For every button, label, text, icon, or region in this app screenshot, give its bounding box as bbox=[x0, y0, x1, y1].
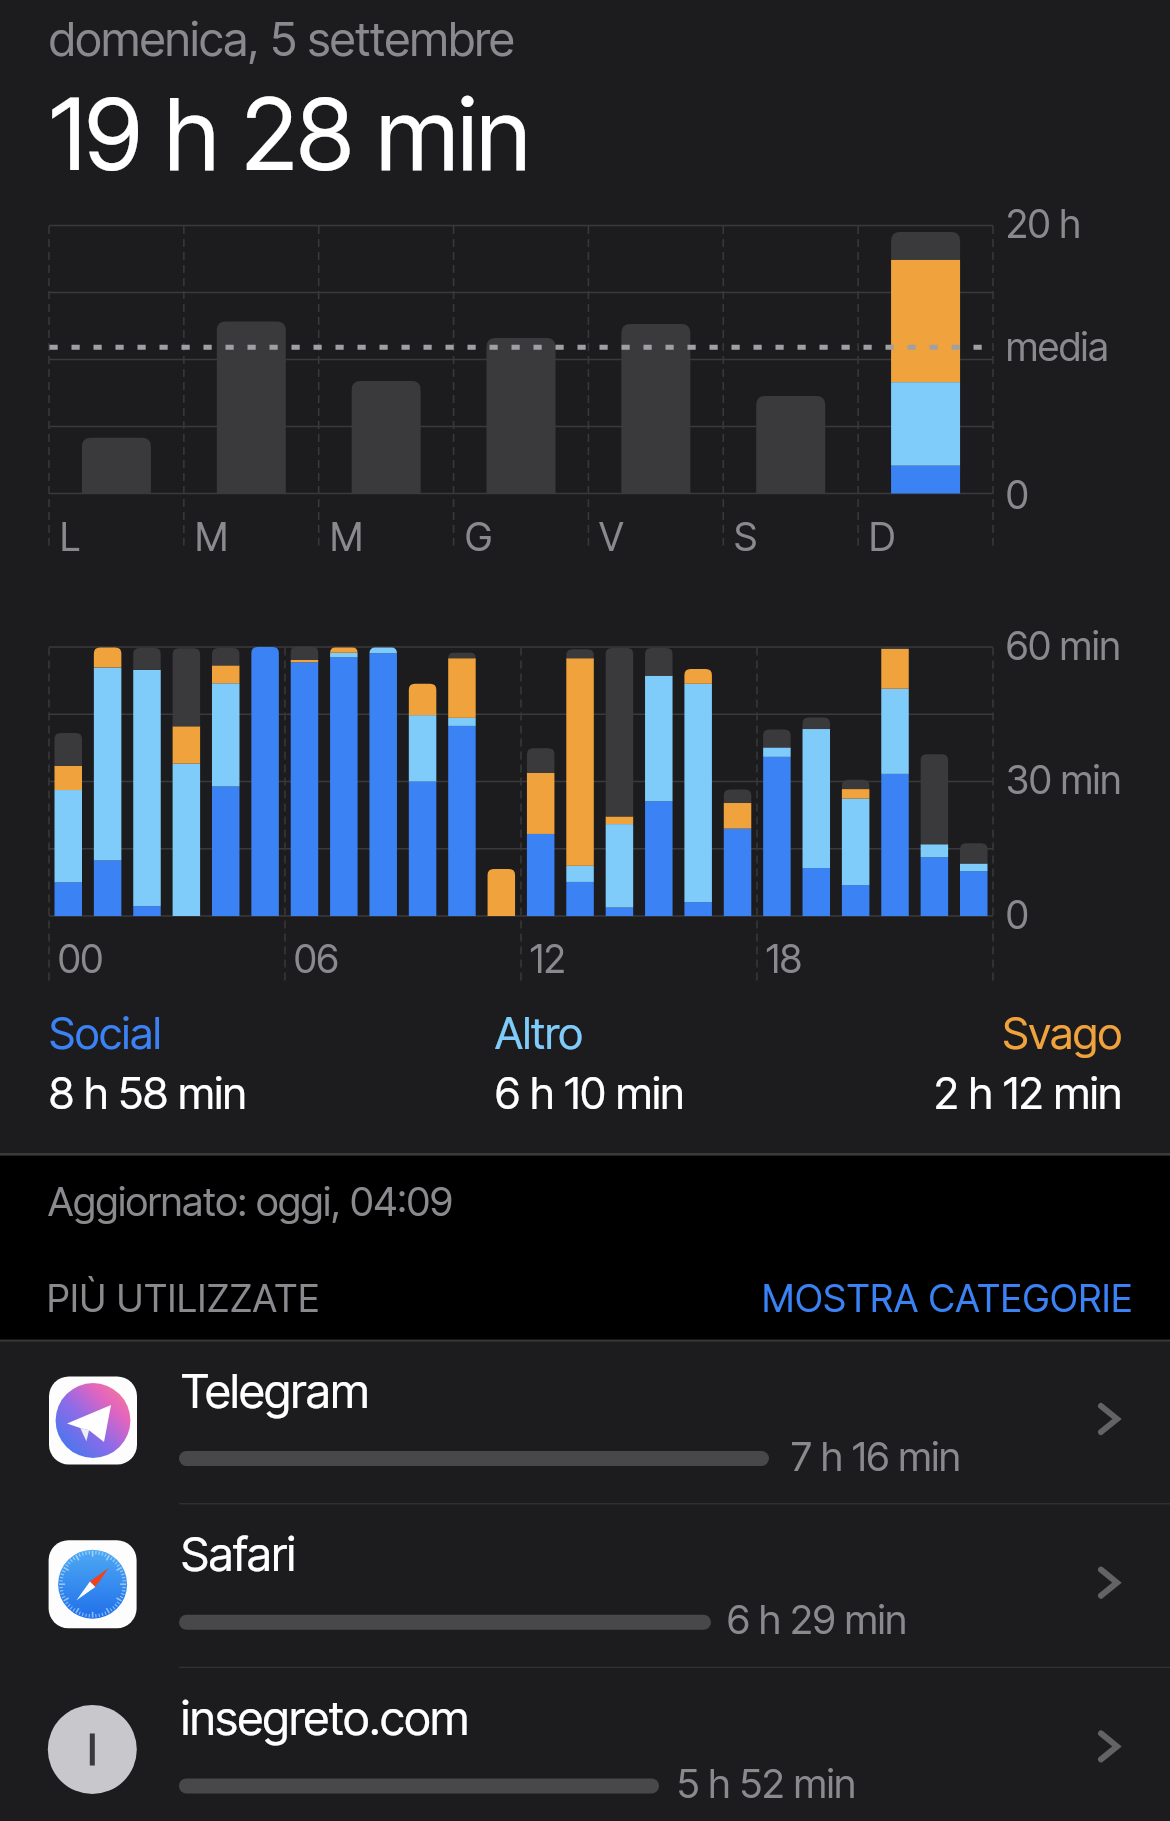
staticText: M bbox=[330, 513, 399, 568]
staticText: L bbox=[60, 513, 129, 568]
staticText: 5 h 52 min bbox=[677, 1759, 1017, 1815]
staticText: 20 h bbox=[1006, 200, 1163, 255]
staticText: Altro bbox=[495, 1006, 700, 1068]
staticText: Safari bbox=[181, 1525, 433, 1591]
staticText: 30 min bbox=[1006, 756, 1170, 811]
staticText: insegreto.com bbox=[181, 1689, 679, 1755]
staticText: D bbox=[869, 513, 938, 568]
staticText: 12 bbox=[530, 935, 629, 990]
staticText: Social bbox=[49, 1006, 287, 1068]
button[interactable]: MOSTRA CATEGORIE bbox=[758, 1272, 1130, 1328]
staticText: 8 h 58 min bbox=[49, 1066, 419, 1128]
staticText: 2 h 12 min bbox=[752, 1066, 1122, 1128]
staticText: 0 bbox=[1006, 891, 1075, 946]
staticText: media bbox=[1006, 323, 1170, 378]
staticText: 6 h 29 min bbox=[727, 1595, 1067, 1651]
staticText: Telegram bbox=[181, 1362, 503, 1428]
staticText: 00 bbox=[58, 935, 157, 990]
staticText: Aggiornato: oggi, 04:09 bbox=[48, 1177, 778, 1233]
staticText: 06 bbox=[294, 935, 393, 990]
staticText: MOSTRA CATEGORIE bbox=[762, 1275, 1170, 1328]
button[interactable]: insegreto.com bbox=[0, 1667, 1170, 1821]
staticText: V bbox=[599, 513, 668, 568]
staticText: 60 min bbox=[1006, 622, 1170, 677]
staticText: 6 h 10 min bbox=[495, 1066, 865, 1128]
staticText: S bbox=[734, 513, 803, 568]
staticText: 7 h 16 min bbox=[791, 1432, 1131, 1488]
button[interactable]: Telegram bbox=[0, 1340, 1170, 1504]
staticText: M bbox=[195, 513, 264, 568]
staticText: 18 bbox=[766, 935, 865, 990]
staticText: G bbox=[465, 513, 534, 568]
staticText: Svago bbox=[917, 1006, 1122, 1068]
staticText: PIÙ UTILIZZATE bbox=[47, 1275, 486, 1328]
staticText: 19 h 28 min bbox=[50, 74, 907, 213]
staticText: 0 bbox=[1006, 471, 1075, 526]
button[interactable]: Safari bbox=[0, 1503, 1170, 1667]
staticText: domenica, 5 settembre bbox=[49, 10, 829, 76]
